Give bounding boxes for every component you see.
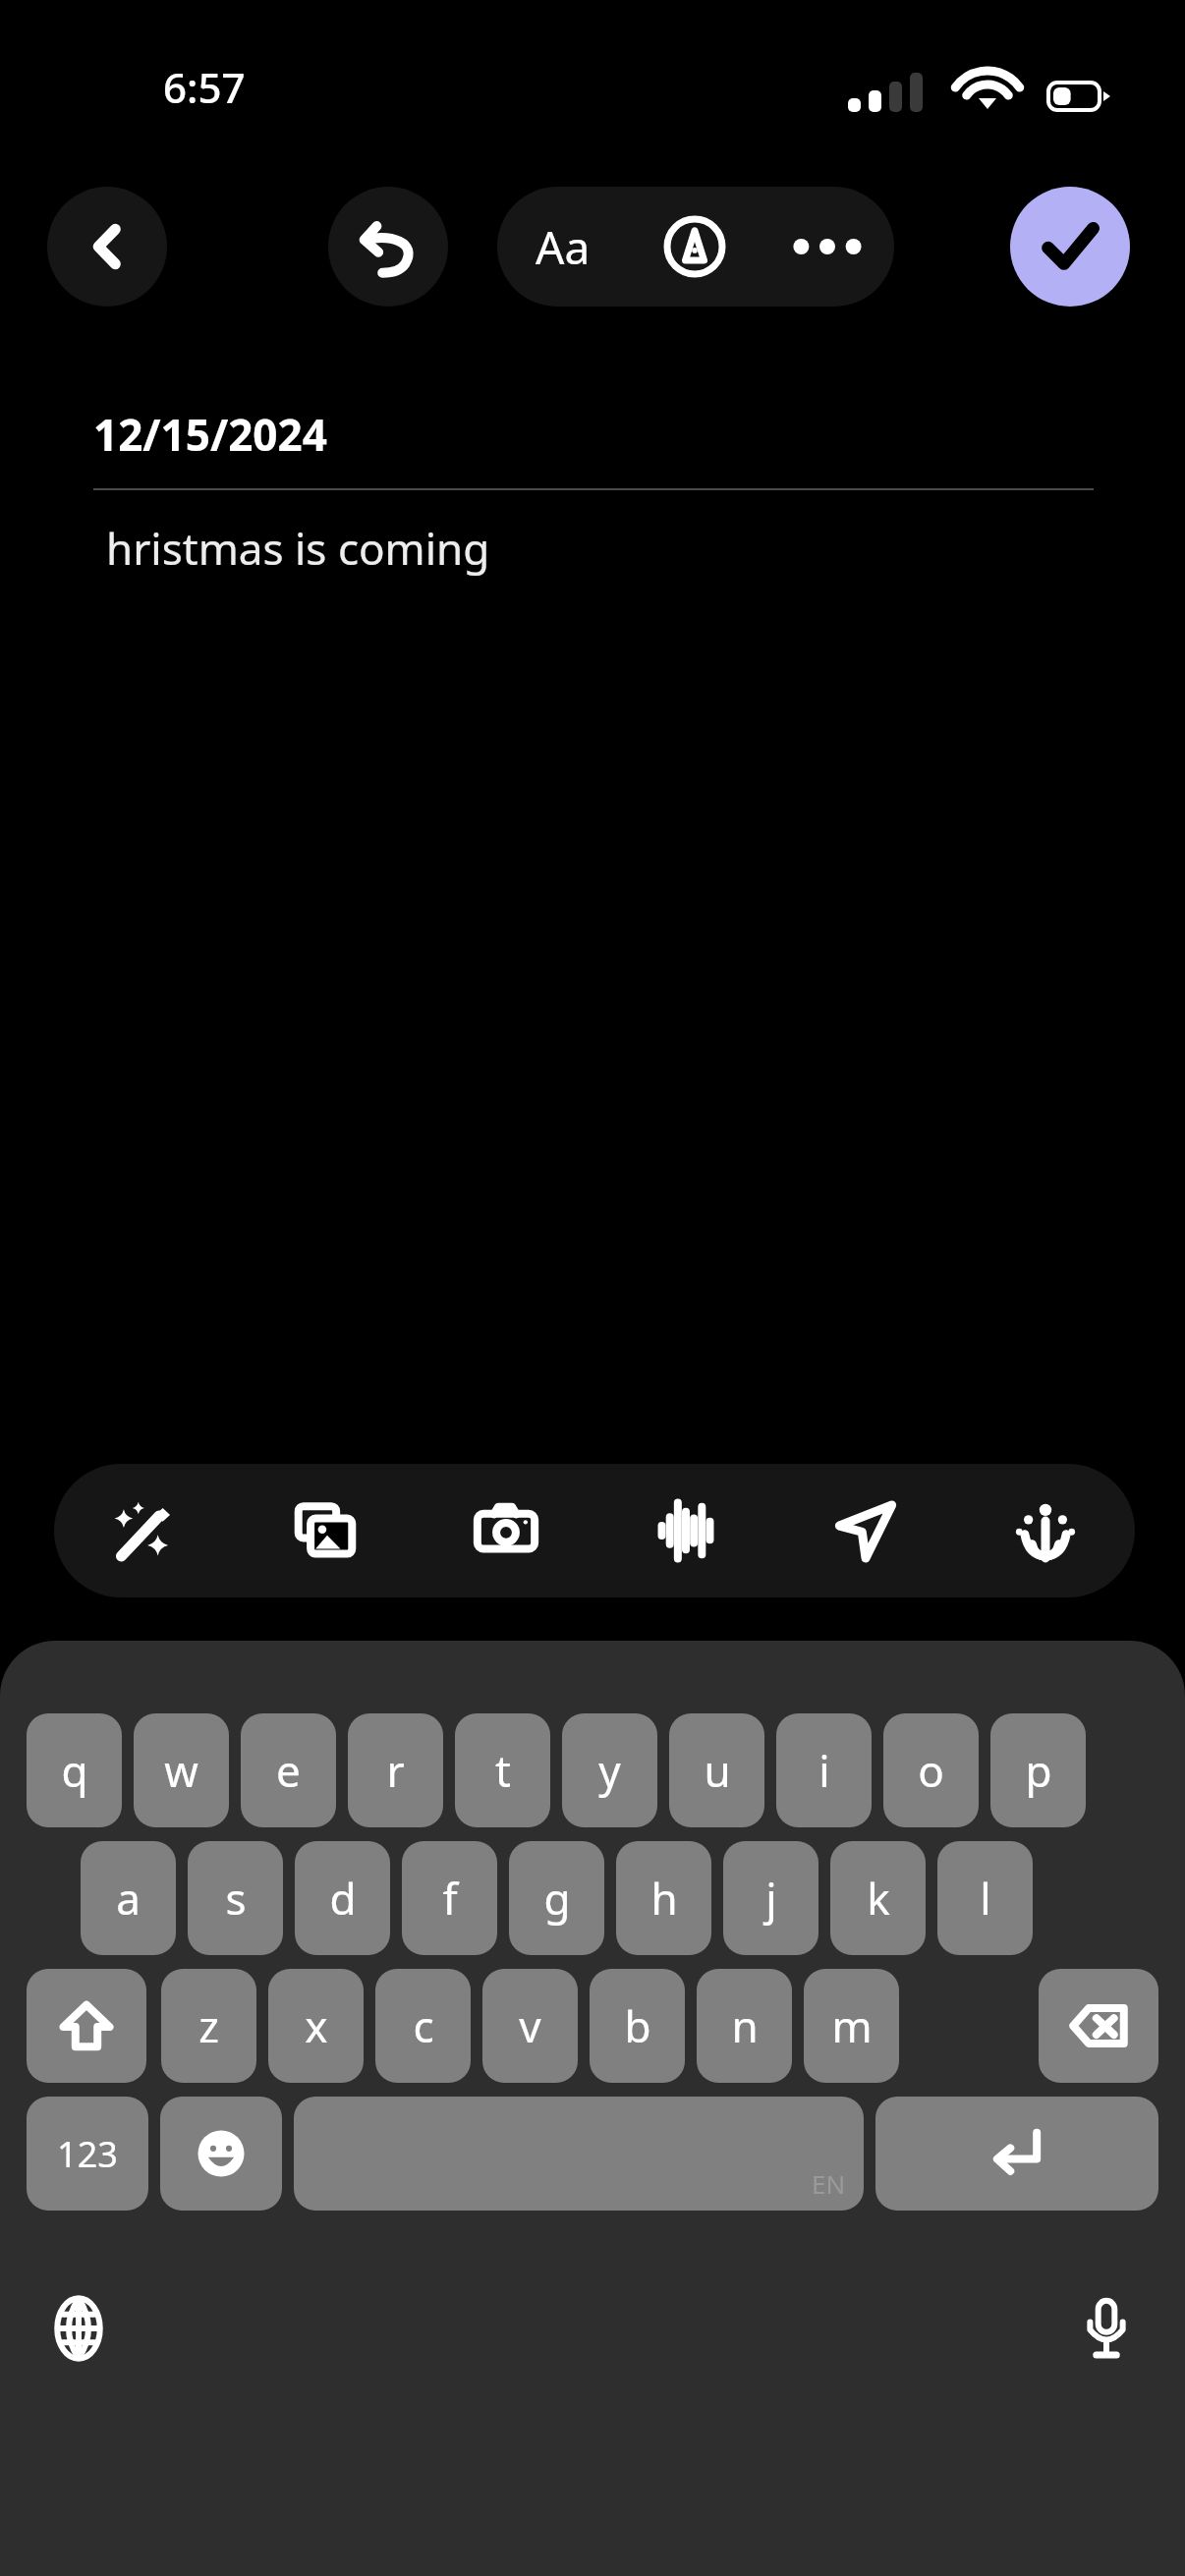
button[interactable]: Enter [875, 2097, 1158, 2211]
staticText: hristmas is coming [106, 519, 490, 578]
button[interactable]: s [188, 1841, 283, 1955]
button[interactable]: Undo [328, 187, 448, 307]
button[interactable]: AI assist [54, 1464, 235, 1597]
button[interactable]: Voice input [1047, 2269, 1165, 2387]
staticText: c [413, 1996, 434, 2055]
button[interactable]: Draw [629, 187, 761, 307]
staticText: l [980, 1869, 991, 1928]
button[interactable]: b [590, 1969, 685, 2083]
staticText: EN [812, 2166, 846, 2201]
button[interactable]: More options [761, 187, 894, 307]
staticText: k [867, 1869, 890, 1928]
staticText: s [225, 1869, 247, 1928]
button[interactable]: u [669, 1713, 764, 1827]
button[interactable]: Aa [497, 187, 629, 307]
staticText: v [519, 1996, 541, 2055]
button[interactable]: r [348, 1713, 443, 1827]
button[interactable]: w [134, 1713, 229, 1827]
button[interactable]: Back [47, 187, 167, 307]
button[interactable]: y [562, 1713, 657, 1827]
button[interactable]: Change language [20, 2269, 138, 2387]
button[interactable]: i [776, 1713, 872, 1827]
button[interactable]: n [697, 1969, 792, 2083]
button[interactable]: z [161, 1969, 256, 2083]
staticText: q [61, 1741, 88, 1800]
staticText: i [818, 1741, 830, 1800]
staticText: h [650, 1869, 678, 1928]
button[interactable]: c [375, 1969, 471, 2083]
button[interactable]: k [830, 1841, 926, 1955]
staticText: t [495, 1741, 511, 1800]
button[interactable]: Gallery [235, 1464, 416, 1597]
button[interactable]: Backspace [1039, 1969, 1158, 2083]
staticText: p [1025, 1741, 1052, 1800]
staticText: 12/15/2024 [93, 405, 327, 464]
staticText: x [305, 1996, 328, 2055]
staticText: j [765, 1869, 777, 1928]
button[interactable]: Shift [27, 1969, 146, 2083]
staticText: b [624, 1996, 651, 2055]
button[interactable]: m [804, 1969, 899, 2083]
staticText: 6:57 [163, 59, 246, 115]
button[interactable]: 123 [27, 2097, 148, 2211]
staticText: y [598, 1741, 621, 1800]
button[interactable]: v [482, 1969, 578, 2083]
staticText: z [198, 1996, 219, 2055]
button[interactable]: h [616, 1841, 711, 1955]
staticText: r [386, 1741, 405, 1800]
button[interactable]: Location [775, 1464, 955, 1597]
button[interactable]: j [723, 1841, 818, 1955]
button[interactable]: Done [1010, 187, 1130, 307]
staticText: g [543, 1869, 571, 1928]
staticText: m [831, 1996, 873, 2055]
button[interactable]: Camera [416, 1464, 595, 1597]
button[interactable]: a [81, 1841, 176, 1955]
staticText: a [116, 1869, 141, 1928]
button[interactable]: g [509, 1841, 604, 1955]
staticText: u [704, 1741, 731, 1800]
staticText: 123 [57, 2130, 118, 2178]
button[interactable]: x [268, 1969, 364, 2083]
staticText: w [164, 1741, 198, 1800]
button[interactable]: Space [294, 2097, 864, 2211]
staticText: f [442, 1869, 458, 1928]
button[interactable]: o [883, 1713, 979, 1827]
staticText: o [918, 1741, 944, 1800]
button[interactable]: q [27, 1713, 122, 1827]
button[interactable]: l [937, 1841, 1033, 1955]
button[interactable]: Emoji [160, 2097, 282, 2211]
staticText: Aa [536, 216, 591, 278]
button[interactable]: f [402, 1841, 497, 1955]
button[interactable]: e [241, 1713, 336, 1827]
staticText: d [329, 1869, 357, 1928]
button[interactable]: t [455, 1713, 550, 1827]
button[interactable]: Audio [595, 1464, 775, 1597]
staticText: n [731, 1996, 759, 2055]
staticText: e [276, 1741, 301, 1800]
button[interactable]: Sticker [955, 1464, 1135, 1597]
button[interactable]: p [990, 1713, 1086, 1827]
button[interactable]: d [295, 1841, 390, 1955]
